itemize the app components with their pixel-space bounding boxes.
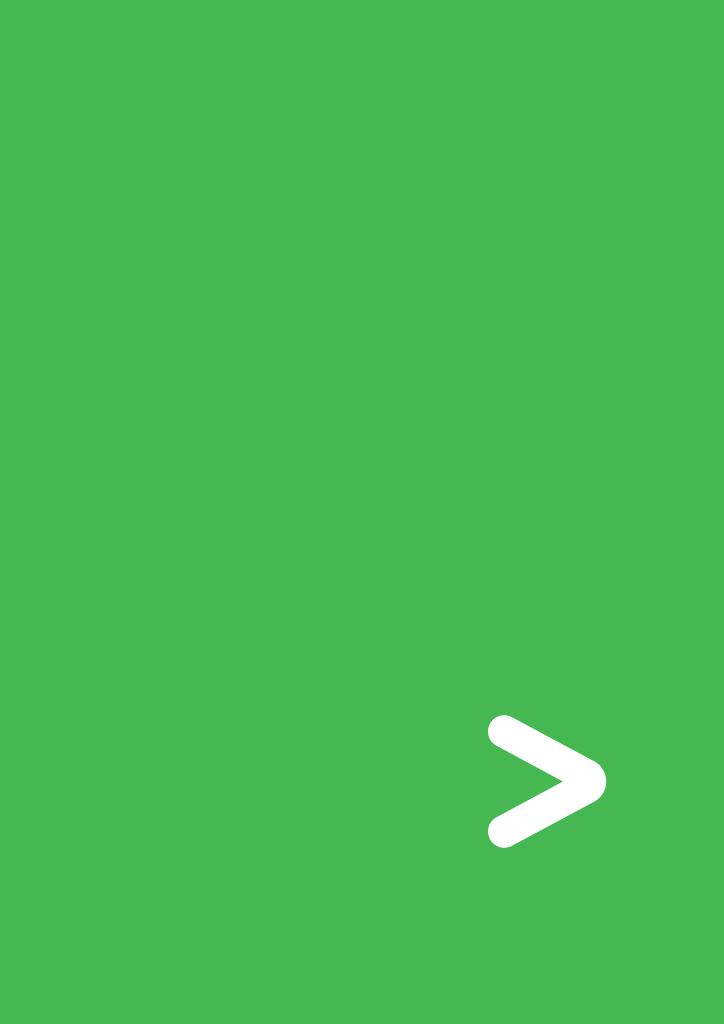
button[interactable]: Next [470,697,638,865]
